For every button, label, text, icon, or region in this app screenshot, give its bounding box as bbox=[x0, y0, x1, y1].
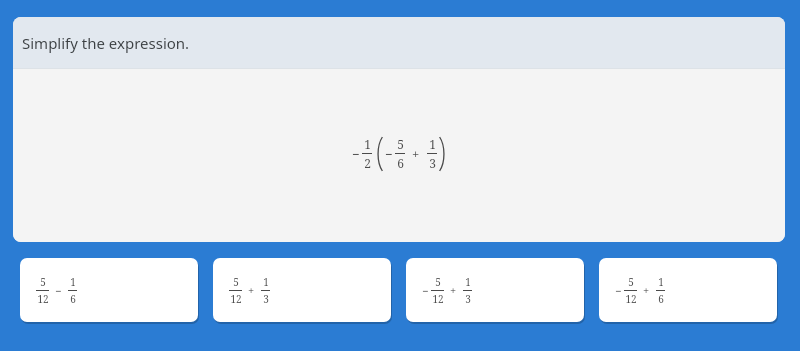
staticText: 1 bbox=[364, 136, 371, 152]
staticText: − bbox=[352, 145, 360, 163]
staticText: 6 bbox=[658, 292, 664, 306]
staticText: 1 bbox=[658, 275, 664, 289]
staticText: 3 bbox=[465, 292, 471, 306]
button[interactable]: Answer 5 over 12 minus 1 over 6 bbox=[20, 258, 198, 322]
staticText: − bbox=[615, 283, 622, 298]
staticText: 6 bbox=[70, 292, 76, 306]
staticText: 1 bbox=[70, 275, 76, 289]
staticText: + bbox=[643, 283, 650, 298]
staticText: 12 bbox=[230, 292, 242, 306]
staticText: 6 bbox=[397, 155, 404, 171]
staticText: 2 bbox=[364, 155, 371, 171]
button[interactable]: Answer minus 5 over 12 plus 1 over 6 bbox=[599, 258, 777, 322]
staticText: 12 bbox=[37, 292, 49, 306]
staticText: 5 bbox=[628, 275, 634, 289]
staticText: − bbox=[385, 145, 393, 163]
staticText: 1 bbox=[429, 136, 436, 152]
staticText: 1 bbox=[263, 275, 269, 289]
staticText: + bbox=[412, 145, 420, 163]
staticText: 1 bbox=[465, 275, 471, 289]
button[interactable]: Answer minus 5 over 12 plus 1 over 3 bbox=[406, 258, 584, 322]
staticText: 5 bbox=[40, 275, 46, 289]
staticText: 12 bbox=[432, 292, 444, 306]
staticText: Simplify the expression. bbox=[22, 33, 190, 53]
staticText: 5 bbox=[233, 275, 239, 289]
staticText: 5 bbox=[397, 136, 404, 152]
staticText: 5 bbox=[435, 275, 441, 289]
staticText: 3 bbox=[429, 155, 436, 171]
staticText: − bbox=[422, 283, 429, 298]
button[interactable]: Answer 5 over 12 plus 1 over 3 bbox=[213, 258, 391, 322]
staticText: − bbox=[55, 283, 62, 298]
staticText: + bbox=[450, 283, 457, 298]
staticText: 3 bbox=[263, 292, 269, 306]
staticText: + bbox=[248, 283, 255, 298]
staticText: 12 bbox=[625, 292, 637, 306]
